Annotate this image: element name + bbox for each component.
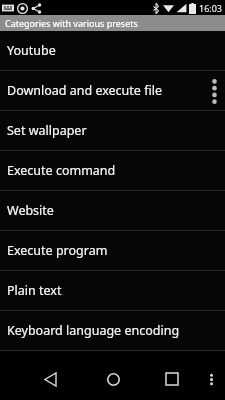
button[interactable]: Execute command [0,151,225,190]
button[interactable]: Execute program [0,231,225,270]
staticText: Execute command [7,162,116,179]
button[interactable]: More options [208,76,220,106]
button[interactable]: More options [202,365,220,393]
button[interactable]: Keyboard language encoding [0,311,225,350]
button[interactable]: Plain text [0,271,225,310]
button[interactable]: Youtube [0,31,225,70]
button[interactable]: Back [36,365,64,393]
staticText: Plain text [7,282,62,299]
staticText: 16:03 [199,2,223,14]
staticText: Set wallpaper [7,122,87,139]
staticText: Website [7,202,54,219]
staticText: Execute program [7,242,108,259]
staticText: Download and execute file [7,82,162,99]
staticText: Youtube [7,42,56,59]
button[interactable]: Recent apps [158,365,186,393]
button[interactable]: Set wallpaper [0,111,225,150]
staticText: Keyboard language encoding [7,322,180,339]
button[interactable]: Website [0,191,225,230]
button[interactable]: Home [99,365,127,393]
staticText: Categories with various presets [5,17,138,29]
button[interactable]: Download and execute file [0,71,225,110]
